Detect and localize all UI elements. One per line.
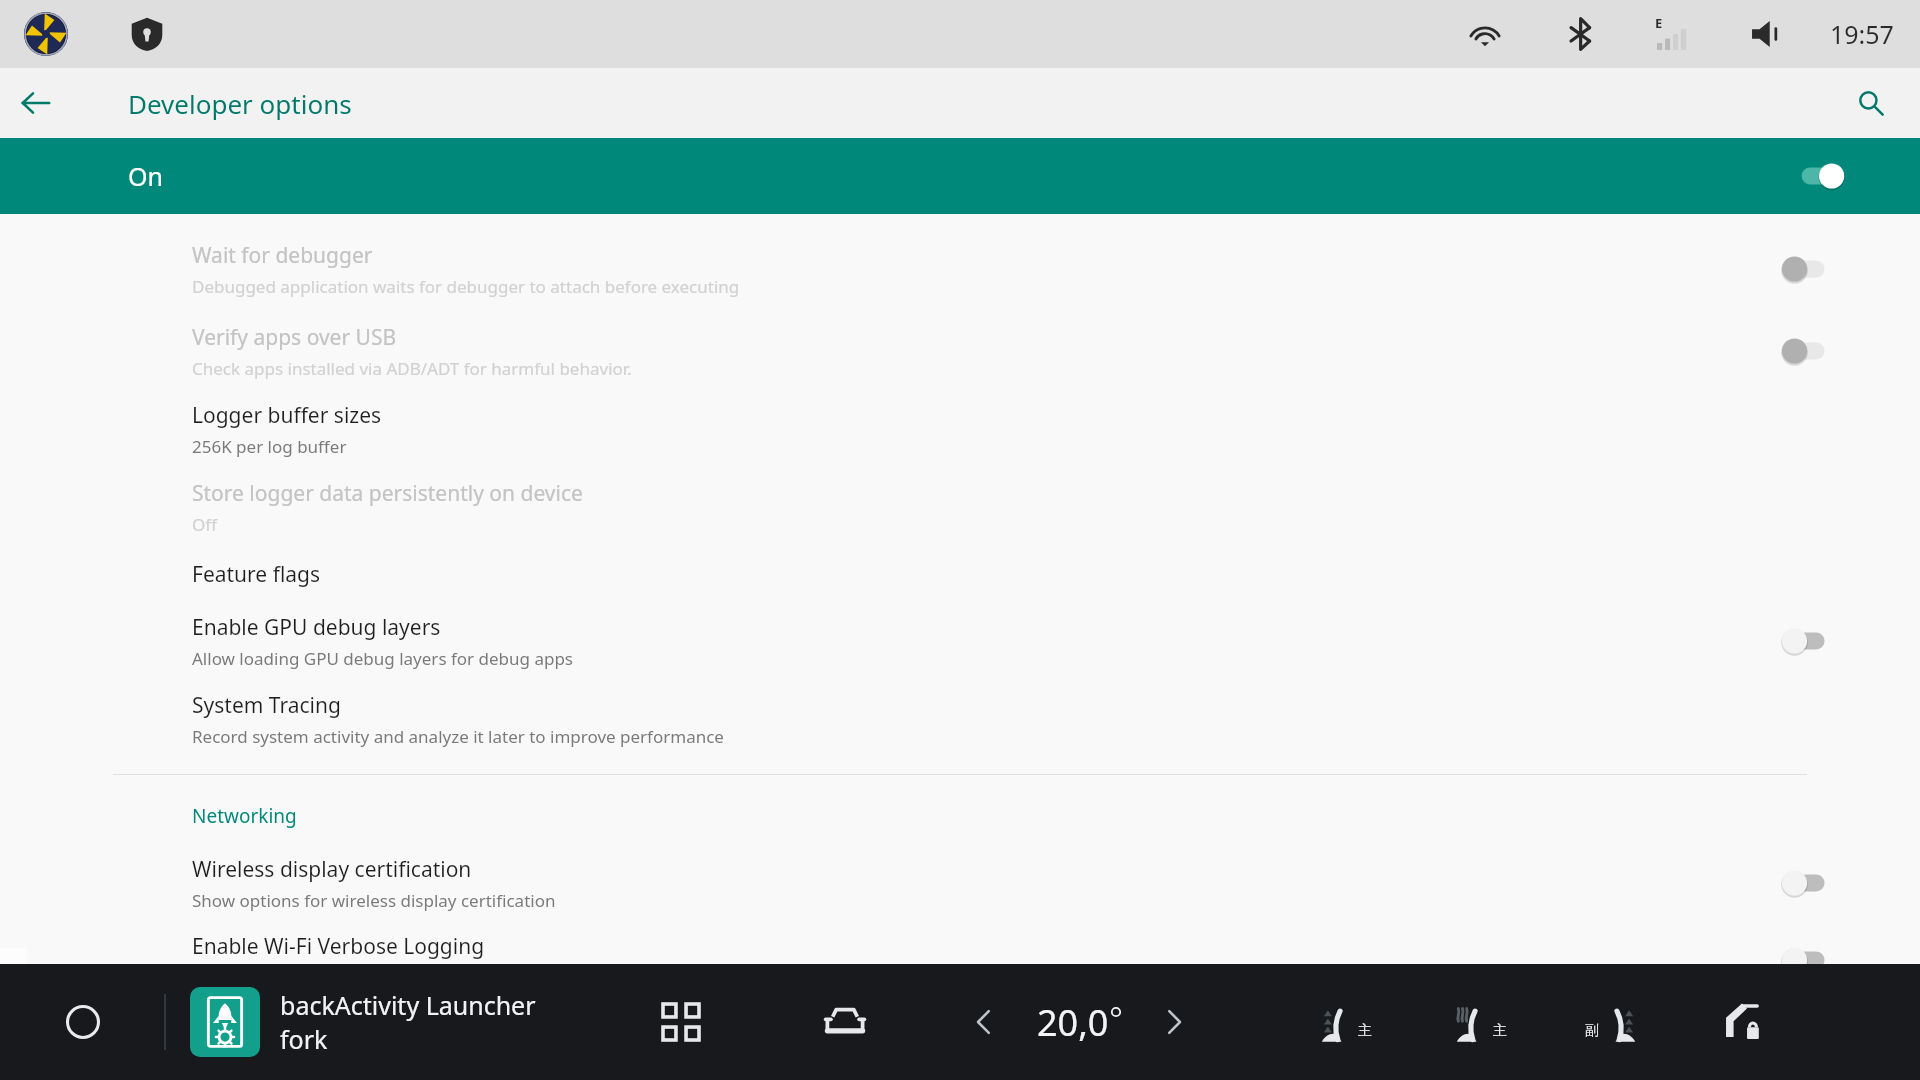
staticText: E bbox=[1655, 14, 1663, 32]
staticText: Check apps installed via ADB/ADT for har… bbox=[192, 357, 632, 380]
staticText: 20,0 bbox=[1037, 998, 1109, 1047]
staticText: Show options for wireless display certif… bbox=[192, 889, 556, 912]
button[interactable]: On bbox=[0, 138, 1920, 214]
staticText: 副 bbox=[1585, 1022, 1599, 1040]
staticText: Debugged application waits for debugger … bbox=[192, 275, 740, 298]
staticText: Enable GPU debug layers bbox=[192, 613, 441, 642]
staticText: Mobile data always active bbox=[192, 999, 444, 1028]
button[interactable]: Charge port lock bbox=[1706, 986, 1778, 1058]
button[interactable]: Driver seat ventilation bbox=[1305, 982, 1385, 1062]
button[interactable]: Feature flags bbox=[0, 546, 1920, 602]
staticText: Enable Wi-Fi Verbose Logging bbox=[192, 932, 485, 961]
staticText: Wait for debugger bbox=[192, 241, 373, 270]
button[interactable]: Logger buffer sizes bbox=[0, 390, 1920, 468]
button[interactable]: Home bbox=[52, 991, 114, 1053]
staticText: 256K per log buffer bbox=[192, 435, 347, 458]
button[interactable]: Verify apps over USB bbox=[0, 312, 1920, 390]
button[interactable]: Search bbox=[1844, 76, 1898, 130]
staticText: Increase Wi-Fi logging level, show per S… bbox=[192, 966, 688, 989]
button[interactable]: Driver seat heating bbox=[1440, 982, 1520, 1062]
staticText: Networking bbox=[192, 803, 297, 829]
button[interactable]: Increase temperature bbox=[1145, 993, 1203, 1051]
button[interactable]: Back bbox=[8, 75, 64, 131]
button[interactable]: System Tracing bbox=[0, 680, 1920, 758]
button[interactable]: Passenger seat ventilation bbox=[1572, 982, 1652, 1062]
staticText: Off bbox=[192, 513, 217, 536]
staticText: Developer options bbox=[128, 86, 352, 121]
staticText: Allow loading GPU debug layers for debug… bbox=[192, 647, 573, 670]
staticText: Record system activity and analyze it la… bbox=[192, 725, 724, 748]
button[interactable]: Wireless display certification bbox=[0, 845, 1920, 921]
staticText: 19:57 bbox=[1830, 17, 1894, 51]
staticText: System Tracing bbox=[192, 691, 341, 720]
staticText: fork bbox=[280, 1022, 328, 1056]
button[interactable]: All apps bbox=[648, 989, 714, 1055]
button[interactable]: Vehicle bbox=[810, 987, 880, 1057]
button[interactable]: Store logger data persistently on device bbox=[0, 468, 1920, 546]
staticText: Wireless display certification bbox=[192, 855, 472, 884]
button[interactable]: Mobile data always active bbox=[0, 999, 1920, 1077]
staticText: On bbox=[128, 159, 163, 193]
staticText: Feature flags bbox=[192, 560, 321, 589]
button[interactable]: Wait for debugger bbox=[0, 226, 1920, 312]
staticText: 主 bbox=[1358, 1022, 1372, 1040]
staticText: Verify apps over USB bbox=[192, 323, 397, 352]
staticText: Logger buffer sizes bbox=[192, 401, 382, 430]
staticText: 主 bbox=[1493, 1022, 1507, 1040]
staticText: backActivity Launcher bbox=[280, 988, 536, 1022]
button[interactable]: Enable Wi-Fi Verbose Logging bbox=[0, 921, 1920, 999]
staticText: Store logger data persistently on device bbox=[192, 479, 583, 508]
button[interactable]: Decrease temperature bbox=[955, 993, 1013, 1051]
button[interactable]: Enable GPU debug layers bbox=[0, 602, 1920, 680]
button[interactable]: backActivity Launcher bbox=[190, 987, 536, 1057]
